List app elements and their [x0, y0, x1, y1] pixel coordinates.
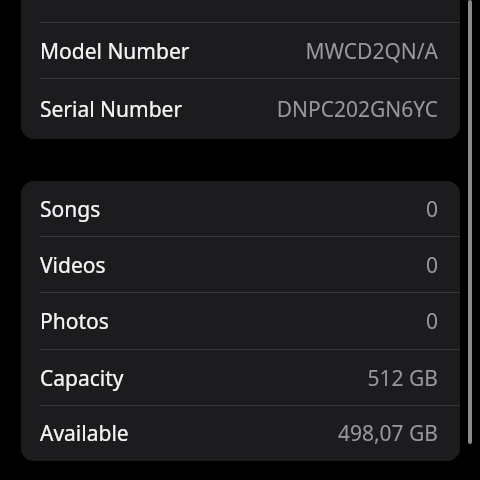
staticText: 498,07 GB — [337, 419, 438, 448]
staticText: Model Number — [40, 37, 190, 66]
staticText: Serial Number — [40, 95, 183, 124]
button[interactable]: Model Name — [21, 0, 460, 23]
staticText: Capacity — [40, 364, 124, 393]
button[interactable]: Videos — [21, 237, 460, 293]
staticText: Songs — [40, 195, 101, 224]
staticText: Available — [40, 419, 129, 448]
staticText: 0 — [425, 307, 438, 336]
button[interactable]: Photos — [21, 293, 460, 350]
staticText: 0 — [425, 251, 438, 280]
button[interactable]: Serial Number — [21, 79, 460, 139]
other: Scroll position indicator — [468, 0, 472, 444]
staticText: Photos — [40, 307, 109, 336]
button[interactable]: Songs — [21, 182, 460, 237]
staticText: MWCD2QN/A — [305, 37, 438, 66]
staticText: 0 — [425, 195, 438, 224]
staticText: DNPC202GN6YC — [276, 95, 438, 124]
button[interactable]: Model Number — [21, 23, 460, 79]
button[interactable]: Available — [21, 406, 460, 461]
staticText: Videos — [40, 251, 106, 280]
button[interactable]: Capacity — [21, 350, 460, 406]
staticText: 512 GB — [367, 364, 438, 393]
